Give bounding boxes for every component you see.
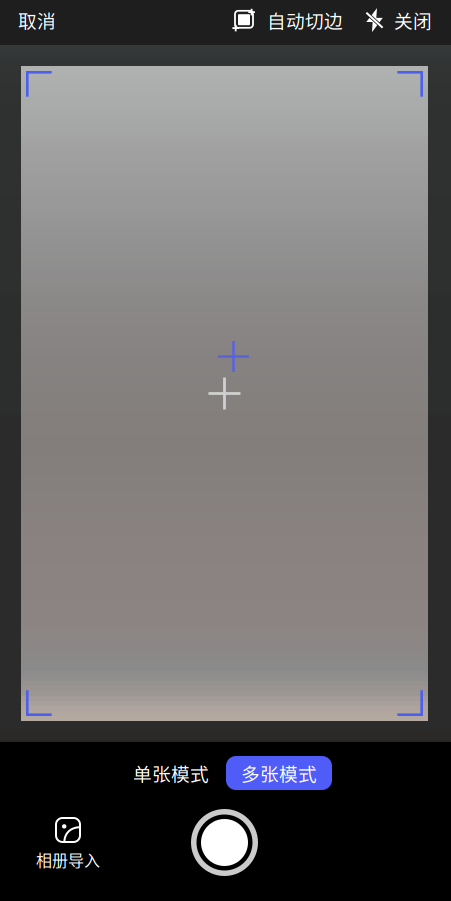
button[interactable]: 取消	[2, 0, 72, 42]
staticText: 多张模式	[241, 759, 317, 786]
button[interactable]: Shutter	[191, 809, 258, 876]
staticText: 相册导入	[36, 848, 100, 871]
staticText: 自动切边	[267, 6, 343, 33]
button[interactable]: 单张模式	[125, 756, 217, 790]
button[interactable]: 多张模式	[226, 756, 332, 790]
staticText: 关闭	[394, 6, 432, 33]
button[interactable]: 自动切边	[231, 0, 347, 42]
button[interactable]: 相册导入	[20, 818, 116, 874]
button[interactable]: 关闭	[363, 0, 435, 42]
staticText: 取消	[18, 6, 56, 33]
staticText: 单张模式	[133, 759, 209, 786]
